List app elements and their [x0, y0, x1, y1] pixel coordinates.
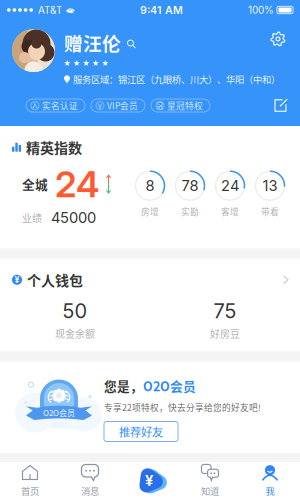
staticText: AT&T — [38, 4, 62, 16]
staticText: 24 — [55, 162, 99, 206]
staticText: 8 — [145, 177, 154, 194]
staticText: 13 — [262, 177, 277, 194]
staticText: 我 — [265, 484, 274, 497]
staticText: 50 — [62, 299, 87, 323]
staticText: O2O会员 — [143, 377, 196, 395]
button[interactable]: 知道 — [180, 459, 240, 500]
button[interactable]: V — [91, 99, 145, 112]
button[interactable]: 冠 — [151, 99, 210, 112]
staticText: 专享22项特权，快去分享给您的好友吧! — [104, 401, 261, 413]
button[interactable]: ¥ — [0, 259, 300, 299]
button[interactable]: 人 — [26, 99, 85, 112]
button[interactable]: 设置 — [265, 26, 291, 52]
button[interactable]: 编辑 — [271, 96, 290, 115]
staticText: 带看 — [261, 205, 279, 218]
staticText: 您是， — [104, 377, 143, 395]
staticText: 24 — [221, 177, 239, 194]
staticText: 房增 — [141, 205, 159, 218]
staticText: 冠 — [156, 101, 163, 110]
staticText: ¥ — [145, 472, 153, 490]
staticText: 全城 — [22, 175, 48, 193]
staticText: 服务区域：锦江区（九眼桥、川大）、华阳（中和） — [73, 72, 280, 86]
button[interactable]: 首页 — [0, 459, 60, 500]
staticText: 个人钱包 — [27, 270, 83, 290]
button[interactable]: 我 — [240, 459, 300, 500]
staticText: 实勘 — [181, 205, 199, 218]
staticText: 45000 — [51, 209, 96, 227]
staticText: 客增 — [221, 205, 239, 218]
staticText: 皇冠特权 — [167, 99, 203, 112]
staticText: 推荐好友 — [119, 423, 163, 440]
staticText: VIP会员 — [107, 99, 138, 112]
staticText: ¥ — [14, 274, 19, 285]
button[interactable]: 推荐好友 — [104, 421, 178, 441]
staticText: 首页 — [21, 484, 39, 497]
staticText: V — [98, 101, 102, 110]
staticText: 100% — [248, 4, 274, 16]
staticText: 精英指数 — [26, 137, 82, 157]
staticText: 业绩 — [22, 210, 42, 225]
button[interactable]: 消息 — [60, 459, 120, 500]
staticText: 实名认证 — [42, 99, 78, 112]
staticText: 好房豆 — [210, 326, 240, 341]
staticText: 消息 — [81, 484, 99, 497]
staticText: 赠汪伦 — [64, 29, 121, 56]
staticText: 知道 — [201, 484, 219, 497]
staticText: O2O会员 — [43, 407, 75, 418]
staticText: 人 — [31, 101, 38, 110]
staticText: 78 — [181, 177, 198, 194]
staticText: 75 — [213, 299, 236, 323]
staticText: 9:41 AM — [140, 3, 183, 16]
staticText: 现金余额 — [55, 326, 95, 341]
button[interactable]: 钱包 — [120, 462, 180, 500]
